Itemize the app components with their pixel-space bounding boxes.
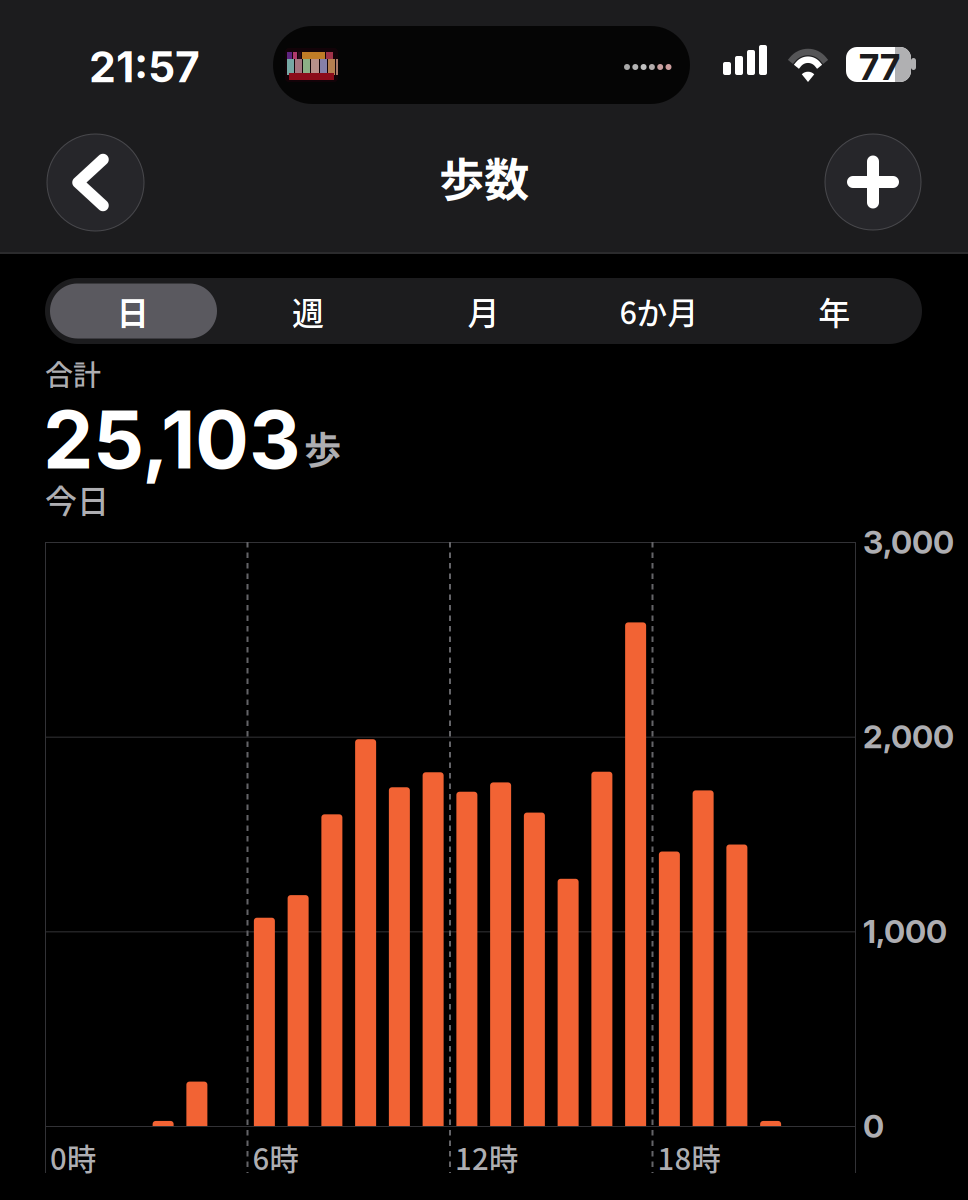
staticText: 月 <box>467 288 499 334</box>
staticText: 今日 <box>45 476 109 522</box>
staticText: 6時 <box>252 1136 298 1178</box>
staticText: 12時 <box>455 1136 518 1178</box>
staticText: 77 <box>859 45 900 89</box>
button[interactable]: 日 <box>45 278 220 344</box>
staticText: 0 <box>863 1107 884 1145</box>
staticText: 年 <box>818 288 850 334</box>
staticText: 歩数 <box>439 144 529 210</box>
staticText: 18時 <box>657 1136 720 1178</box>
staticText: 0時 <box>50 1136 96 1178</box>
button[interactable]: 月 <box>396 278 571 344</box>
button[interactable]: Back <box>47 134 144 231</box>
staticText: 2,000 <box>863 717 954 756</box>
staticText: 合計 <box>45 353 101 393</box>
staticText: 日 <box>117 288 149 334</box>
staticText: 歩 <box>304 421 341 475</box>
staticText: 21:57 <box>89 41 200 93</box>
staticText: 週 <box>292 288 324 334</box>
staticText: 6か月 <box>619 289 698 333</box>
button[interactable]: Add data <box>825 134 921 230</box>
staticText: 1,000 <box>863 912 947 951</box>
button[interactable]: 年 <box>747 278 922 344</box>
staticText: 25,103 <box>43 391 301 488</box>
button[interactable]: 6か月 <box>571 278 747 344</box>
button[interactable]: 週 <box>220 278 396 344</box>
staticText: 3,000 <box>863 523 954 561</box>
